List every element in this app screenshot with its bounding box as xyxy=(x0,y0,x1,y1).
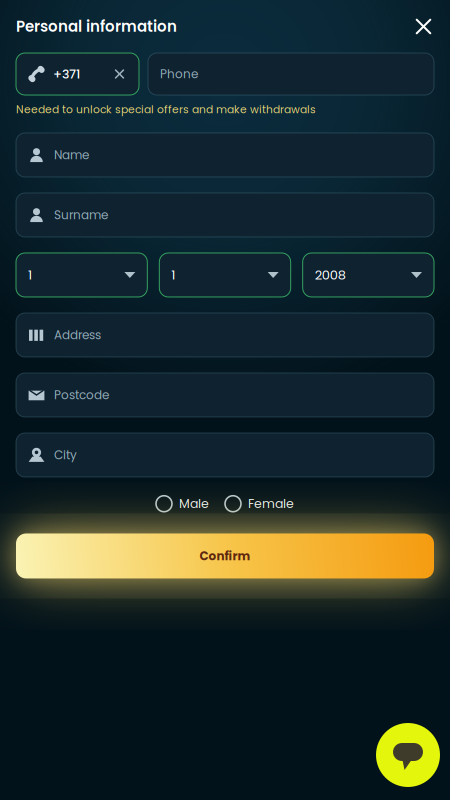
staticText: Phone xyxy=(160,66,198,82)
staticText: Name xyxy=(54,147,89,163)
staticText: 1 xyxy=(171,266,175,284)
button[interactable]: Male xyxy=(156,495,209,512)
button[interactable]: Chat support xyxy=(376,723,440,787)
staticText: +371 xyxy=(53,65,80,83)
button[interactable]: Close xyxy=(413,16,434,37)
staticText: Postcode xyxy=(54,387,109,403)
staticText: 2008 xyxy=(315,266,346,284)
staticText: Personal information xyxy=(16,16,177,37)
staticText: Confirm xyxy=(199,548,250,564)
staticText: Male xyxy=(179,495,209,512)
staticText: Address xyxy=(54,327,101,343)
button[interactable]: 1 xyxy=(16,253,147,297)
button[interactable]: 2008 xyxy=(303,253,434,297)
button[interactable]: Phone xyxy=(148,53,434,95)
button[interactable]: Confirm xyxy=(16,533,434,578)
button[interactable]: Postcode xyxy=(16,373,434,417)
staticText: Surname xyxy=(54,207,108,223)
button[interactable]: Female xyxy=(225,495,294,512)
button[interactable]: Name xyxy=(16,133,434,177)
staticText: Female xyxy=(248,495,294,512)
button[interactable]: +371 xyxy=(16,53,139,95)
button[interactable]: City xyxy=(16,433,434,477)
button[interactable]: Surname xyxy=(16,193,434,237)
button[interactable]: 1 xyxy=(159,253,291,297)
staticText: 1 xyxy=(28,266,32,284)
staticText: Needed to unlock special offers and make… xyxy=(16,102,316,117)
button[interactable]: Address xyxy=(16,313,434,357)
staticText: City xyxy=(54,447,77,463)
